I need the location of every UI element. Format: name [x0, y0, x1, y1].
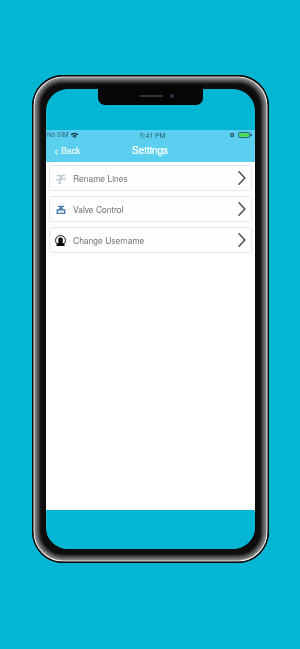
staticText: Rename Lines [73, 172, 128, 184]
button[interactable]: Valve Control [49, 196, 252, 222]
button[interactable]: < Back [46, 142, 93, 158]
staticText: Settings [132, 143, 169, 157]
staticText: No SIM [47, 130, 69, 139]
button[interactable]: Rename Lines [49, 165, 252, 191]
staticText: Valve Control [73, 203, 124, 215]
staticText: Change Username [73, 234, 145, 246]
staticText: 5:41 PM [140, 130, 166, 140]
button[interactable]: Change Username [49, 227, 252, 253]
staticText: < Back [54, 144, 81, 156]
